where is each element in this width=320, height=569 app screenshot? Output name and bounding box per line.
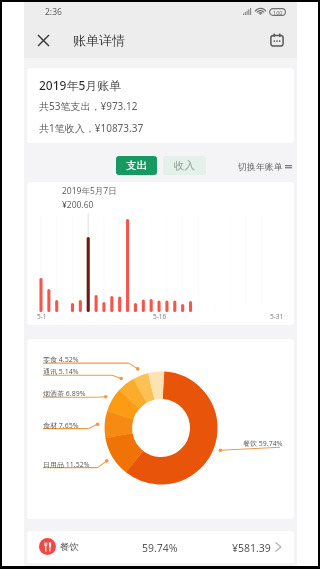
button[interactable]: 切换年账单 [238,155,292,177]
staticText: 食材 7.65% [43,421,79,431]
staticText: 切换年账单 [238,161,283,172]
staticText: 2019年5月账单 [39,77,122,93]
staticText: 通讯 5.14% [43,367,79,377]
staticText: 共1笔收入，¥10873.37 [39,121,144,135]
staticText: ¥581.39 [232,541,271,555]
staticText: 59.74% [142,541,178,555]
staticText: 烟酒茶 6.89% [43,389,86,399]
staticText: 100 [273,9,283,16]
staticText: 2:36 [45,6,62,18]
staticText: 餐饮 [60,541,79,553]
button[interactable]: Calendar [264,27,290,53]
staticText: 收入 [174,159,195,172]
button[interactable]: Close [30,27,56,53]
button[interactable]: 餐饮 [27,531,294,563]
staticText: 餐饮 59.74% [243,439,283,449]
staticText: 5-1 [37,312,47,321]
staticText: 5-31 [270,312,284,321]
button[interactable]: 收入 [163,156,206,175]
button[interactable]: 支出 [116,156,157,175]
staticText: 共53笔支出，¥973.12 [39,99,138,113]
staticText: 零食 4.52% [43,355,79,365]
staticText: 5-16 [153,312,167,321]
staticText: ¥200.60 [62,199,94,211]
staticText: 账单详情 [73,32,125,48]
staticText: 支出 [126,159,147,172]
staticText: 日用品 11.52% [43,460,90,470]
staticText: 2019年5月7日 [62,185,117,197]
